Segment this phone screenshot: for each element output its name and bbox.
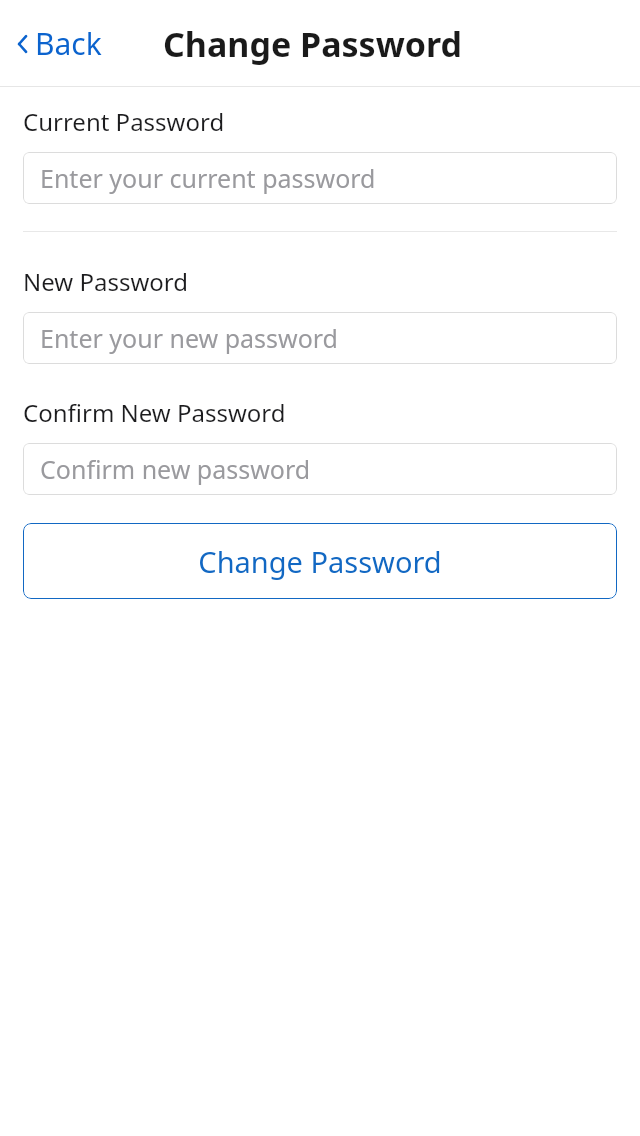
button[interactable]: Back [12,17,106,70]
staticText: Confirm New Password [23,396,286,429]
staticText: Current Password [23,105,225,138]
staticText: Enter your current password [40,161,376,195]
button[interactable]: Change Password [23,523,617,599]
button[interactable]: Confirm new password [23,443,617,495]
staticText: Change Password [163,21,462,67]
staticText: Back [35,23,102,64]
button[interactable]: Enter your new password [23,312,617,364]
button[interactable]: Enter your current password [23,152,617,204]
staticText: New Password [23,265,188,298]
staticText: Change Password [198,542,442,581]
staticText: Enter your new password [40,321,338,355]
staticText: Confirm new password [40,452,311,486]
